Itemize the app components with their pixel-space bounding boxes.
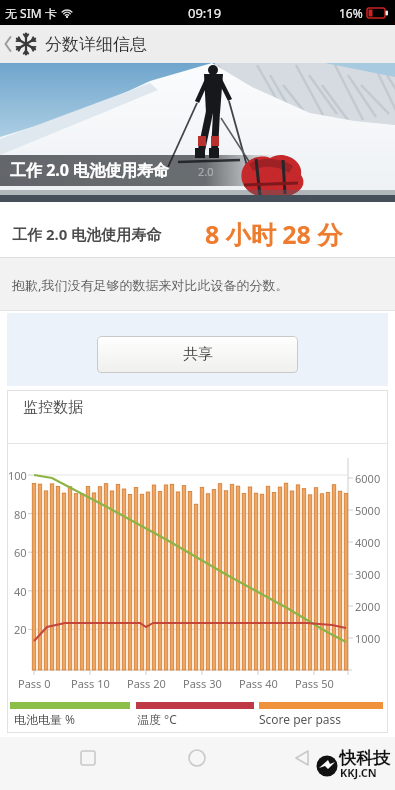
staticText: 100 [8, 468, 27, 483]
staticText: 20 [14, 622, 27, 637]
staticText: Pass 50 [295, 676, 334, 691]
staticText: 抱歉,我们没有足够的数据来对比此设备的分数。 [12, 276, 289, 294]
staticText: 16% [339, 5, 363, 21]
staticText: Pass 40 [239, 676, 278, 691]
staticText: 8 小时 28 分 [205, 217, 343, 251]
staticText: 60 [14, 545, 27, 560]
staticText: 1000 [355, 631, 381, 646]
button[interactable]: 分数详细信息 [0, 25, 395, 63]
staticText: 分数详细信息 [45, 34, 147, 55]
staticText: 电池电量 % [14, 711, 76, 727]
staticText: Pass 10 [71, 676, 110, 691]
staticText: 无 SIM 卡 [5, 5, 57, 21]
staticText: Pass 20 [127, 676, 166, 691]
staticText: 40 [14, 584, 27, 599]
button[interactable] [75, 745, 101, 771]
staticText: 2000 [355, 599, 381, 614]
button[interactable]: 共享 [97, 336, 298, 373]
staticText: 快科技 [339, 748, 390, 769]
staticText: 5000 [355, 503, 381, 518]
button[interactable] [184, 745, 210, 771]
staticText: 6000 [355, 471, 381, 486]
staticText: 4000 [355, 535, 381, 550]
staticText: 3000 [355, 567, 381, 582]
staticText: Pass 0 [18, 676, 51, 691]
button[interactable] [289, 745, 315, 771]
staticText: Score per pass [259, 711, 342, 727]
staticText: 监控数据 [23, 398, 83, 417]
staticText: 共享 [183, 345, 213, 364]
staticText: KKJ.CN [340, 765, 377, 780]
staticText: 温度 °C [137, 711, 177, 727]
staticText: Pass 30 [183, 676, 222, 691]
staticText: 2.0 [198, 164, 214, 179]
staticText: 80 [14, 507, 27, 522]
staticText: 工作 2.0 电池使用寿命 [10, 159, 170, 181]
staticText: 09:19 [188, 4, 222, 22]
staticText: 工作 2.0 电池使用寿命 [12, 224, 162, 244]
